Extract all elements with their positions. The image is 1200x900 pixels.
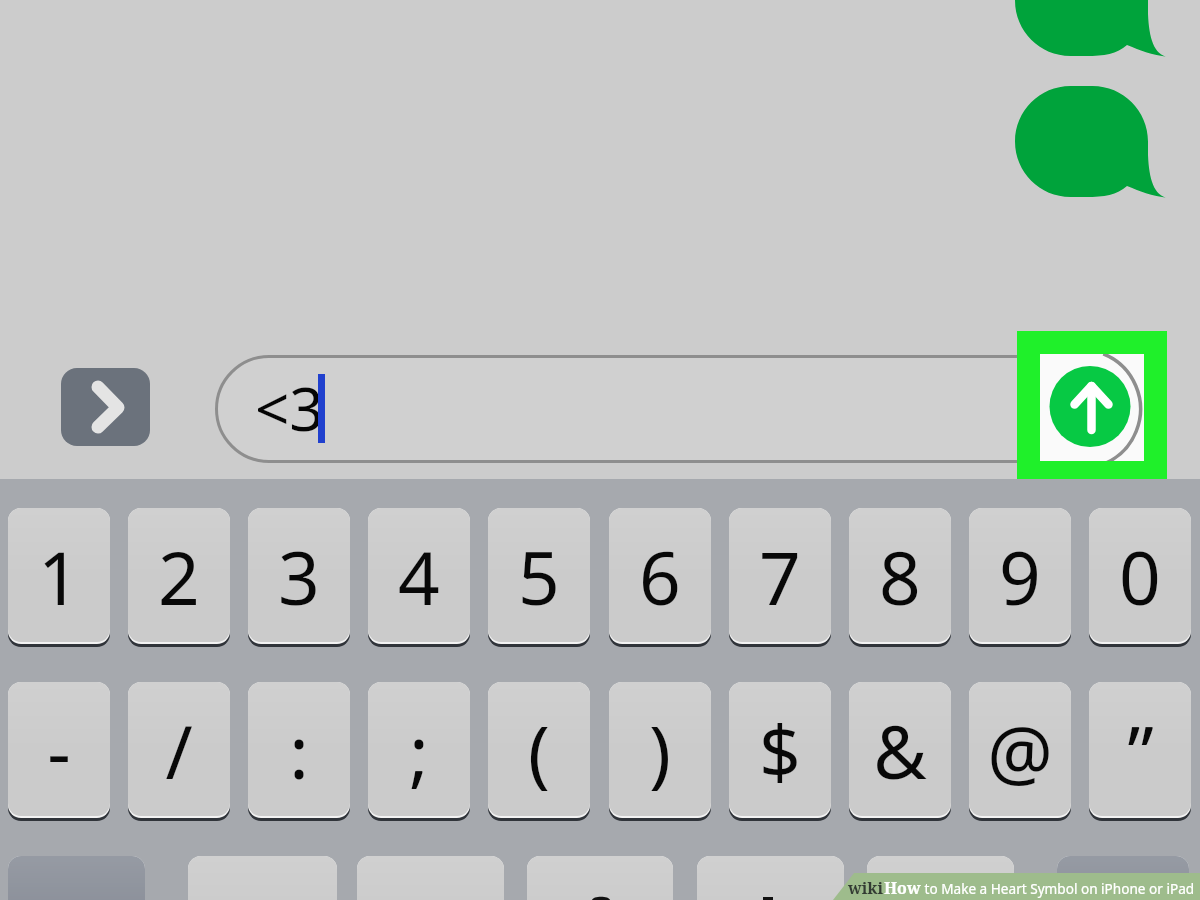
- staticText: 3: [278, 527, 320, 626]
- button[interactable]: ;: [368, 682, 470, 822]
- staticText: ;: [409, 701, 429, 800]
- button[interactable]: 3: [248, 508, 350, 648]
- button[interactable]: 2: [128, 508, 230, 648]
- staticText: 2: [158, 527, 200, 626]
- button[interactable]: Key: [527, 856, 673, 900]
- button[interactable]: 7: [729, 508, 831, 648]
- button[interactable]: Key: [357, 856, 504, 900]
- staticText: ): [649, 701, 671, 800]
- button[interactable]: 4: [368, 508, 470, 648]
- button[interactable]: 9: [969, 508, 1071, 648]
- staticText: $: [759, 701, 801, 800]
- button[interactable]: /: [128, 682, 230, 822]
- button[interactable]: Send message: [1017, 331, 1167, 484]
- staticText: wiki: [848, 877, 884, 899]
- staticText: 0: [1119, 527, 1161, 626]
- button[interactable]: 0: [1089, 508, 1191, 648]
- button[interactable]: 6: [609, 508, 711, 648]
- button[interactable]: Shift: [8, 856, 145, 900]
- button[interactable]: Key: [188, 856, 337, 900]
- staticText: ”: [1127, 701, 1154, 800]
- staticText: to Make a Heart Symbol on iPhone or iPad: [921, 879, 1195, 898]
- button[interactable]: @: [969, 682, 1071, 822]
- staticText: <3: [255, 367, 324, 449]
- button[interactable]: &: [849, 682, 951, 822]
- staticText: &: [873, 701, 927, 800]
- staticText: 9: [999, 527, 1041, 626]
- staticText: 1: [38, 527, 80, 626]
- staticText: -: [47, 701, 71, 800]
- staticText: How: [884, 877, 921, 899]
- button[interactable]: 8: [849, 508, 951, 648]
- staticText: 5: [518, 527, 560, 626]
- button[interactable]: Expand apps: [61, 368, 150, 446]
- staticText: /: [165, 701, 193, 800]
- button[interactable]: ”: [1089, 682, 1191, 822]
- button[interactable]: Key: [867, 856, 1014, 900]
- button[interactable]: ): [609, 682, 711, 822]
- button[interactable]: -: [8, 682, 110, 822]
- staticText: 7: [759, 527, 801, 626]
- button[interactable]: 5: [488, 508, 590, 648]
- staticText: @: [987, 701, 1053, 800]
- staticText: 8: [879, 527, 921, 626]
- button[interactable]: Key: [697, 856, 844, 900]
- button[interactable]: <3: [215, 355, 1143, 463]
- button[interactable]: $: [729, 682, 831, 822]
- staticText: :: [289, 701, 309, 800]
- button[interactable]: :: [248, 682, 350, 822]
- staticText: (: [528, 701, 550, 800]
- button[interactable]: Delete: [1057, 856, 1189, 900]
- staticText: 6: [639, 527, 681, 626]
- button[interactable]: (: [488, 682, 590, 822]
- button[interactable]: 1: [8, 508, 110, 648]
- staticText: 4: [398, 527, 440, 626]
